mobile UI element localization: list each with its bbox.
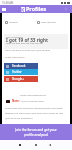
button[interactable]: Join the forum and get your profile anal… [0, 124, 72, 140]
button[interactable]: Home [31, 140, 40, 149]
staticText: Quiz Completed [6, 36, 23, 39]
staticText: This is a partial result [21, 100, 44, 103]
staticText: Google+ [12, 77, 24, 81]
staticText: Twitter [12, 70, 22, 74]
button[interactable]: Google+ [4, 76, 38, 82]
button[interactable]: Account [64, 7, 68, 11]
staticText: Want you want to know your Quiz profile? [5, 49, 50, 52]
staticText: Profiles [26, 5, 47, 12]
staticText: Take the quiz and see how you do! [6, 42, 43, 45]
staticText: MOBILE [9, 21, 18, 24]
button[interactable]: MOBILE [5, 21, 18, 24]
staticText: I got 19 of 33 right [6, 37, 48, 43]
staticText: Credit: quiz.example.com [20, 94, 46, 97]
button[interactable]: Twitter [4, 69, 38, 75]
button[interactable]: Recents [15, 140, 24, 149]
staticText: some stimulus has been removed from this… [5, 106, 68, 119]
staticText: Note: [12, 99, 20, 103]
button[interactable]: Back [45, 140, 54, 149]
staticText: Facebook [12, 64, 26, 68]
button[interactable]: Facebook [4, 63, 38, 69]
staticText: 10:48 AM [2, 1, 14, 5]
staticText: WEB VERSION [41, 21, 57, 24]
staticText: Share your results [5, 56, 25, 59]
button[interactable]: WEB VERSION [37, 21, 57, 24]
staticText: K [21, 7, 25, 12]
staticText: Join the forum and get your profile anal… [15, 128, 57, 136]
